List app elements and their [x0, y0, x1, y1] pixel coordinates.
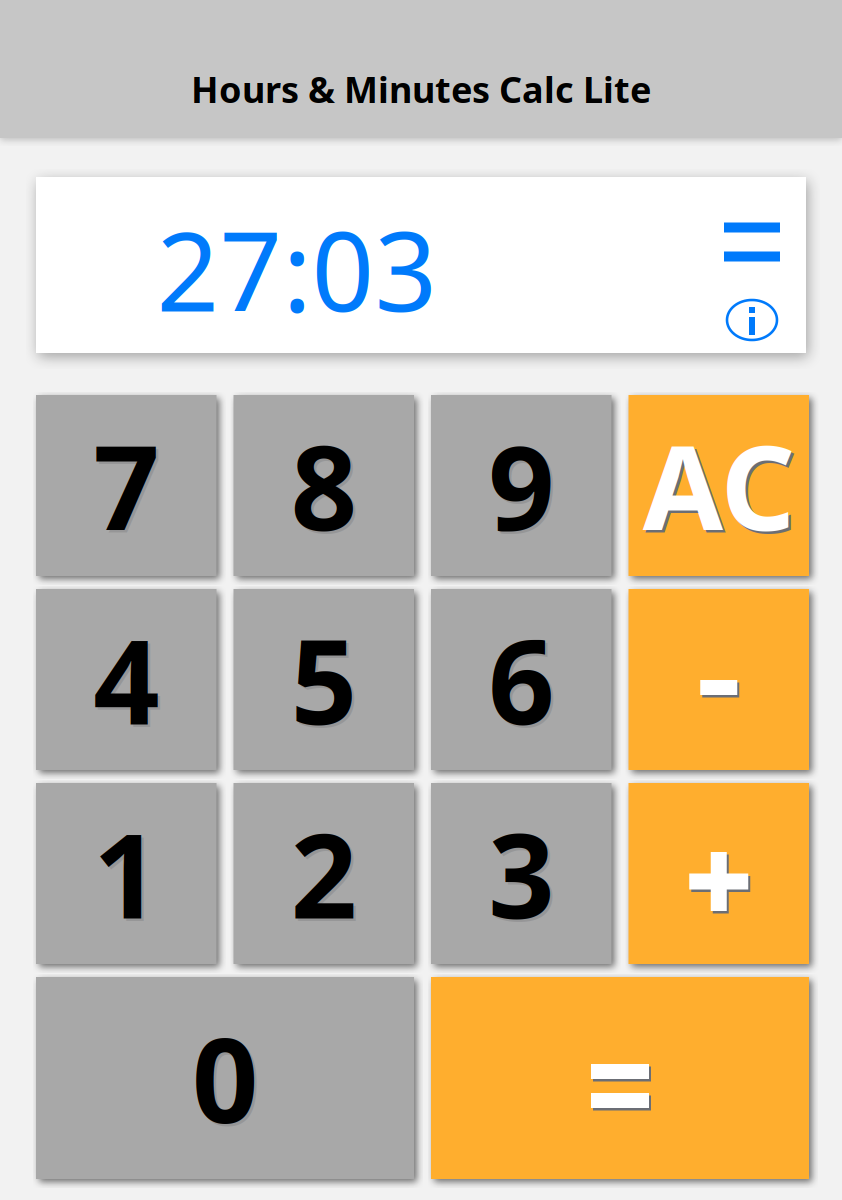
- staticText: 6: [488, 602, 554, 756]
- staticText: 7: [93, 408, 159, 562]
- button[interactable]: 7: [36, 395, 216, 576]
- button[interactable]: 3: [431, 783, 611, 964]
- staticText: AC: [643, 408, 795, 562]
- button[interactable]: Information: [681, 273, 801, 353]
- staticText: 1: [93, 796, 159, 950]
- button[interactable]: 0: [36, 977, 414, 1179]
- button[interactable]: AC: [628, 395, 809, 576]
- staticText: 4: [93, 602, 159, 756]
- staticText: Hours & Minutes Calc Lite: [191, 65, 651, 113]
- button[interactable]: 9: [431, 395, 611, 576]
- staticText: 2: [291, 796, 357, 950]
- button[interactable]: 6: [431, 589, 611, 770]
- staticText: 5: [291, 602, 357, 756]
- staticText: 9: [488, 408, 554, 562]
- button[interactable]: 1: [36, 783, 216, 964]
- button[interactable]: 2: [233, 783, 414, 964]
- button[interactable]: Plus: [628, 783, 809, 964]
- staticText: 0: [192, 1001, 258, 1155]
- staticText: 27:03: [156, 196, 437, 342]
- staticText: 8: [291, 408, 357, 562]
- button[interactable]: Equals: [681, 177, 801, 273]
- button[interactable]: 4: [36, 589, 216, 770]
- button[interactable]: 5: [233, 589, 414, 770]
- staticText: 3: [488, 796, 554, 950]
- button[interactable]: 27:03: [36, 177, 556, 353]
- button[interactable]: 8: [233, 395, 414, 576]
- button[interactable]: Equals: [431, 977, 809, 1179]
- button[interactable]: Minus: [628, 589, 809, 770]
